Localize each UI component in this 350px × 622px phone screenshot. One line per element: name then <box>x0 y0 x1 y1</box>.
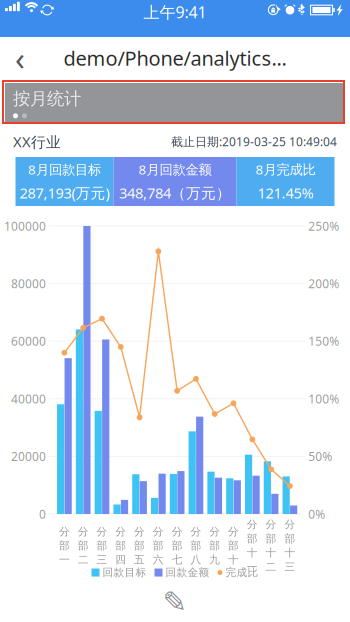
staticText: 8月完成比 <box>255 160 315 178</box>
staticText: 分 <box>228 525 239 538</box>
staticText: 分 <box>115 525 126 538</box>
staticText: 七 <box>172 553 183 566</box>
staticText: 部 <box>59 539 70 552</box>
staticText: 十 <box>284 546 295 559</box>
staticText: 20000 <box>11 448 46 464</box>
staticText: 五 <box>134 553 145 566</box>
staticText: 三 <box>96 553 107 566</box>
staticText: 九 <box>209 553 220 566</box>
staticText: 100% <box>308 391 339 407</box>
staticText: 完成比 <box>225 566 258 579</box>
staticText: XX行业 <box>13 132 61 151</box>
staticText: 十 <box>228 553 239 566</box>
staticText: 四 <box>115 553 126 566</box>
staticText: 50% <box>308 448 332 464</box>
staticText: 150% <box>308 333 339 349</box>
staticText: 分 <box>209 525 220 538</box>
staticText: 0 <box>39 506 46 522</box>
staticText: 80000 <box>11 276 46 291</box>
staticText: 40000 <box>11 391 46 407</box>
staticText: 分 <box>153 525 164 538</box>
staticText: 287,193(万元) <box>19 183 109 203</box>
staticText: 0% <box>308 506 325 522</box>
staticText: 三 <box>284 560 295 573</box>
staticText: 8月回款目标 <box>28 160 101 178</box>
staticText: 121.45% <box>257 183 313 203</box>
staticText: 部 <box>78 539 89 552</box>
staticText: 部 <box>209 539 220 552</box>
staticText: 分 <box>59 525 70 538</box>
staticText: 按月统计 <box>13 88 81 109</box>
staticText: 分 <box>78 525 89 538</box>
staticText: 部 <box>228 539 239 552</box>
staticText: 250% <box>308 218 339 234</box>
button[interactable]: Edit <box>153 582 197 622</box>
staticText: 部 <box>284 532 295 545</box>
staticText: 分 <box>172 525 183 538</box>
staticText: 60000 <box>11 333 46 349</box>
staticText: demo/Phone/analytics... <box>63 45 286 71</box>
staticText: 分 <box>247 518 258 531</box>
staticText: 部 <box>115 539 126 552</box>
staticText: 一 <box>59 553 70 566</box>
staticText: 分 <box>134 525 145 538</box>
staticText: ✎ <box>162 585 187 619</box>
staticText: 截止日期:2019-03-25 10:49:04 <box>171 133 337 149</box>
staticText: 8月回款金额 <box>138 160 211 178</box>
staticText: ‹ <box>15 37 25 79</box>
staticText: 十 <box>247 546 258 559</box>
staticText: 二 <box>78 553 89 566</box>
staticText: 八 <box>190 553 201 566</box>
staticText: 部 <box>134 539 145 552</box>
staticText: 回款金额 <box>165 566 209 579</box>
staticText: 100000 <box>4 218 46 234</box>
staticText: 分 <box>284 518 295 531</box>
staticText: 部 <box>190 539 201 552</box>
staticText: 回款目标 <box>102 566 146 579</box>
staticText: 348,784（万元） <box>119 183 231 203</box>
staticText: 一 <box>247 560 258 573</box>
staticText: 二 <box>266 560 277 573</box>
staticText: 部 <box>247 532 258 545</box>
staticText: 分 <box>96 525 107 538</box>
staticText: 部 <box>266 532 277 545</box>
staticText: 六 <box>153 553 164 566</box>
staticText: 部 <box>153 539 164 552</box>
staticText: 部 <box>96 539 107 552</box>
staticText: 分 <box>266 518 277 531</box>
staticText: 上午9:41 <box>143 1 206 23</box>
staticText: 分 <box>190 525 201 538</box>
staticText: 200% <box>308 276 339 291</box>
staticText: 部 <box>172 539 183 552</box>
staticText: 十 <box>266 546 277 559</box>
button[interactable]: Back <box>0 38 40 78</box>
